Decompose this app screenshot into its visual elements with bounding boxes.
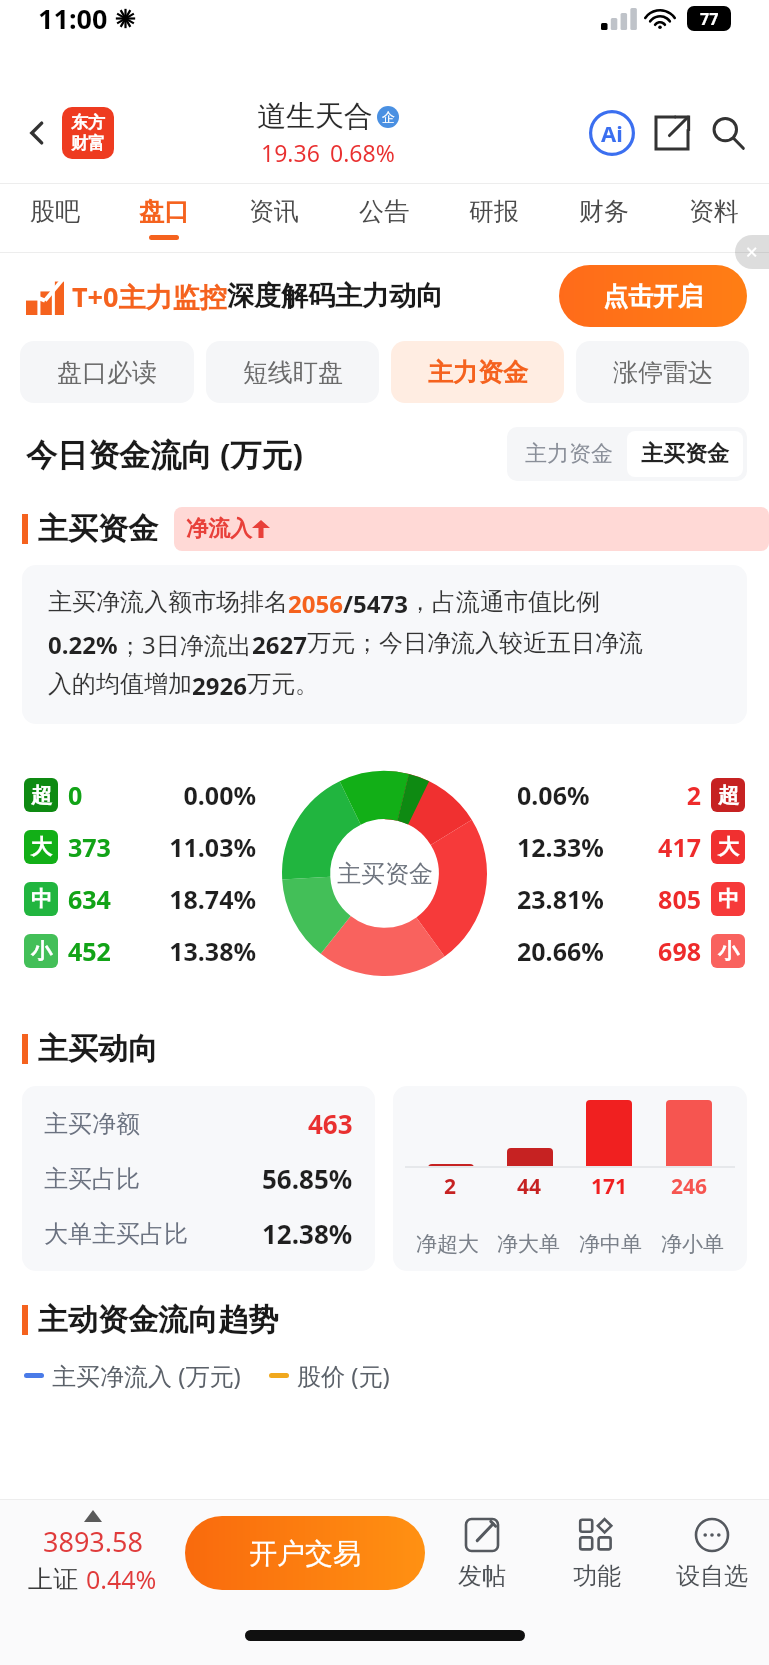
staticText: 中	[718, 886, 739, 912]
staticText: 短线盯盘	[243, 357, 343, 388]
staticText: 净大单	[497, 1231, 560, 1257]
staticText: 主买净额	[44, 1109, 140, 1139]
staticText: 20.66%	[517, 934, 604, 968]
staticText: 今日资金流向 (万元)	[26, 433, 304, 475]
staticText: 0.00%	[146, 778, 256, 812]
button[interactable]: 研报	[439, 184, 549, 252]
staticText: ，占流通市值比例	[408, 587, 600, 617]
button[interactable]: 盘口必读	[20, 341, 194, 403]
staticText: 主买资金	[337, 859, 433, 889]
button[interactable]: 财务	[549, 184, 659, 252]
staticText: 盘口必读	[57, 357, 157, 388]
staticText: 主力资金	[428, 357, 528, 388]
staticText: 2	[444, 1172, 457, 1201]
staticText: 股吧	[30, 196, 80, 227]
button[interactable]: 涨停雷达	[576, 341, 749, 403]
staticText: 净流入	[186, 515, 252, 543]
staticText: 超	[718, 782, 739, 808]
staticText: 主买占比	[44, 1164, 140, 1194]
staticText: 万元。	[247, 669, 319, 699]
staticText: 23.81%	[517, 882, 604, 916]
staticText: ✕	[745, 243, 759, 262]
button[interactable]: 发帖	[425, 1511, 539, 1595]
staticText: 小	[718, 938, 739, 964]
staticText: 涨停雷达	[613, 357, 713, 388]
staticText: 12.33%	[517, 830, 604, 864]
staticText: 万元；今日净流入较近五日净流	[307, 628, 643, 658]
staticText: 小	[31, 938, 52, 964]
button[interactable]: 股吧	[0, 184, 109, 252]
staticText: 公告	[359, 196, 409, 227]
button[interactable]: 功能	[539, 1511, 654, 1595]
staticText: 2056	[288, 587, 343, 620]
staticText: 77	[700, 8, 719, 30]
staticText: 大	[718, 834, 739, 860]
staticText: 主买动向	[38, 1030, 158, 1068]
staticText: 0.44%	[86, 1562, 157, 1596]
staticText: 246	[671, 1172, 708, 1201]
button[interactable]: 短线盯盘	[206, 341, 379, 403]
button[interactable]: 点击开启	[559, 265, 747, 327]
staticText: 上证	[28, 1564, 78, 1595]
button[interactable]: 盘口	[109, 184, 219, 252]
button[interactable]: 东方财富	[62, 107, 114, 159]
staticText: 资讯	[249, 196, 299, 227]
staticText: 12.38%	[262, 1216, 353, 1251]
staticText: 主动资金流向趋势	[38, 1301, 278, 1339]
staticText: 11:00	[38, 0, 108, 37]
staticText: 大	[31, 834, 52, 860]
staticText: 深度解码主力动向	[227, 279, 443, 313]
button[interactable]: 资讯	[219, 184, 329, 252]
staticText: 44	[517, 1172, 542, 1201]
staticText: 13.38%	[146, 934, 256, 968]
button[interactable]: 开户交易	[185, 1516, 425, 1590]
staticText: 452	[68, 934, 111, 968]
staticText: 18.74%	[146, 882, 256, 916]
button[interactable]: 设自选	[654, 1511, 769, 1595]
button[interactable]: 资料	[659, 184, 769, 252]
button[interactable]: 主买资金	[627, 431, 743, 477]
staticText: 盘口	[139, 196, 189, 227]
button[interactable]: 主力资金	[391, 341, 564, 403]
staticText: 373	[68, 830, 111, 864]
button[interactable]: Close	[735, 235, 769, 269]
staticText: 大单主买占比	[44, 1219, 188, 1249]
staticText: 主买净流入 (万元)	[52, 1359, 241, 1392]
staticText: 功能	[573, 1561, 621, 1591]
staticText: 财务	[579, 196, 629, 227]
staticText: 171	[591, 1172, 628, 1201]
staticText: T+0主力监控	[72, 278, 227, 315]
staticText: 2	[629, 778, 701, 812]
button[interactable]: 主力资金	[511, 431, 627, 477]
staticText: 开户交易	[249, 1536, 361, 1571]
staticText: 2627	[252, 628, 307, 661]
staticText: 主买净流入额市场排名	[48, 587, 288, 617]
staticText: 入的均值增加	[48, 669, 192, 699]
staticText: 634	[68, 882, 111, 916]
staticText: 805	[629, 882, 701, 916]
staticText: Ai	[601, 118, 623, 148]
button[interactable]: Share	[649, 110, 695, 156]
staticText: 0.68%	[330, 137, 395, 168]
staticText: 0.22%	[48, 628, 118, 661]
staticText: 财富	[71, 133, 105, 154]
staticText: 发帖	[458, 1561, 506, 1591]
staticText: 企	[382, 109, 395, 125]
staticText: 净小单	[661, 1231, 724, 1257]
staticText: 3893.58	[43, 1523, 143, 1560]
staticText: 698	[629, 934, 701, 968]
button[interactable]: 公告	[329, 184, 439, 252]
staticText: 研报	[469, 196, 519, 227]
button[interactable]: Search	[705, 110, 751, 156]
staticText: 股价 (元)	[297, 1359, 390, 1392]
staticText: 417	[629, 830, 701, 864]
staticText: 资料	[689, 196, 739, 227]
staticText: 2926	[192, 669, 247, 702]
staticText: 超	[31, 782, 52, 808]
button[interactable]: AI	[587, 108, 637, 158]
button[interactable]: Back	[14, 110, 60, 156]
staticText: /5473	[343, 587, 408, 620]
staticText: 净超大	[416, 1231, 479, 1257]
staticText: 0.06%	[517, 778, 590, 812]
button[interactable]: 3893.58	[0, 1510, 185, 1596]
